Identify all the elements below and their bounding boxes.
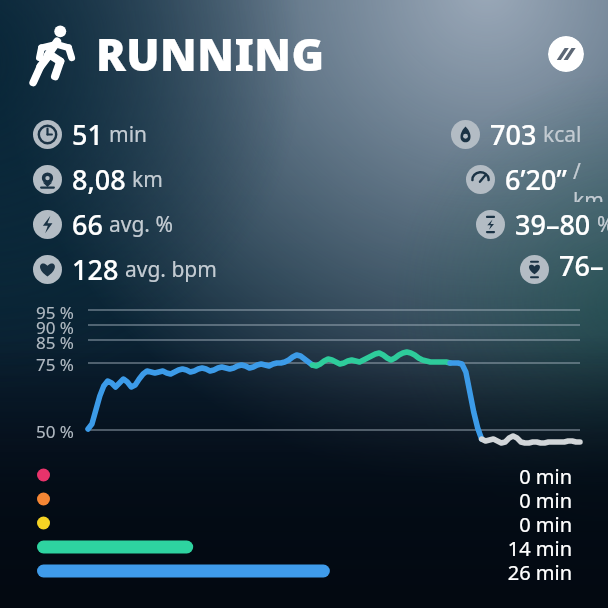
staticText: RUNNING (96, 24, 325, 84)
staticText: min (109, 120, 148, 149)
staticText: 14 min (458, 535, 572, 559)
staticText: 85 % (0, 331, 74, 354)
button[interactable]: 0 min (0, 511, 608, 535)
staticText: 90 % (0, 316, 74, 339)
staticText: 75 % (0, 353, 74, 376)
staticText: 703 (490, 116, 537, 153)
staticText: 0 min (458, 487, 572, 511)
staticText: 51 (72, 116, 103, 153)
staticText: /km (573, 157, 608, 202)
button[interactable]: 51 (33, 112, 148, 157)
button[interactable]: 26 min (0, 559, 608, 583)
staticText: 128 (72, 251, 119, 288)
staticText: 0 min (458, 463, 572, 487)
button[interactable]: Polar logo (548, 36, 584, 72)
button[interactable]: 703 (451, 112, 582, 157)
staticText: % (597, 210, 608, 239)
staticText: avg. bpm (125, 255, 217, 284)
staticText: 0 min (458, 511, 572, 535)
staticText: 76–156 (559, 247, 608, 292)
button[interactable]: 14 min (0, 535, 608, 559)
staticText: 95 % (0, 301, 74, 324)
staticText: 50 % (0, 420, 74, 443)
staticText: 39–80 (515, 206, 591, 243)
staticText: 8,08 (72, 161, 126, 198)
button[interactable]: 6’20” (466, 157, 608, 202)
staticText: km (132, 165, 163, 194)
staticText: 66 (72, 206, 103, 243)
button[interactable]: 0 min (0, 463, 608, 487)
staticText: 26 min (458, 559, 572, 583)
button[interactable]: 39–80 (476, 202, 608, 247)
button[interactable]: 8,08 (33, 157, 163, 202)
button[interactable]: 76–156 (520, 247, 608, 292)
staticText: 6’20” (505, 161, 567, 198)
staticText: avg. % (109, 210, 173, 239)
button[interactable]: 0 min (0, 487, 608, 511)
button[interactable]: 128 (33, 247, 217, 292)
staticText: kcal (543, 120, 582, 149)
button[interactable]: 66 (33, 202, 173, 247)
